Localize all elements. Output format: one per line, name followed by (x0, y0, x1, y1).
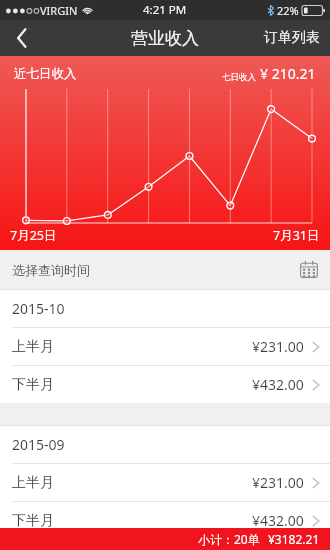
staticText: 近七日收入 (14, 66, 77, 82)
staticText: 2015-09 (12, 435, 65, 454)
staticText: 22% (277, 3, 299, 18)
staticText: 7月31日 (273, 227, 320, 244)
staticText: 2015-10 (12, 299, 65, 318)
staticText: 小计： (198, 532, 234, 547)
staticText: 上半月 (12, 338, 54, 356)
staticText: 7月25日 (10, 227, 57, 244)
button[interactable]: 上半月 (0, 328, 330, 365)
staticText: ¥3182.21 (268, 531, 320, 547)
staticText: 下半月 (12, 376, 54, 394)
button[interactable]: 下半月 (0, 502, 330, 539)
staticText: 选择查询时间 (12, 262, 90, 278)
staticText: 营业收入 (131, 28, 199, 49)
staticText: ¥231.00 (252, 473, 304, 492)
staticText: 20单 (234, 531, 260, 547)
button[interactable]: 选择查询时间 (0, 250, 330, 289)
staticText: 订单列表 (264, 29, 320, 47)
button[interactable]: Pick date (300, 261, 318, 278)
staticText: VIRGIN (40, 3, 78, 18)
staticText: 上半月 (12, 474, 54, 492)
staticText: 4:21 PM (143, 2, 187, 18)
button[interactable]: 订单列表 (254, 20, 330, 56)
button[interactable]: Back (0, 20, 44, 56)
staticText: ¥ 210.21 (260, 64, 316, 83)
staticText: ¥231.00 (252, 337, 304, 356)
button[interactable]: 下半月 (0, 366, 330, 403)
staticText: ¥432.00 (252, 375, 304, 394)
button[interactable]: 上半月 (0, 464, 330, 501)
staticText: ¥432.00 (252, 511, 304, 530)
staticText: 下半月 (12, 512, 54, 530)
staticText: 七日收入 (222, 72, 256, 83)
